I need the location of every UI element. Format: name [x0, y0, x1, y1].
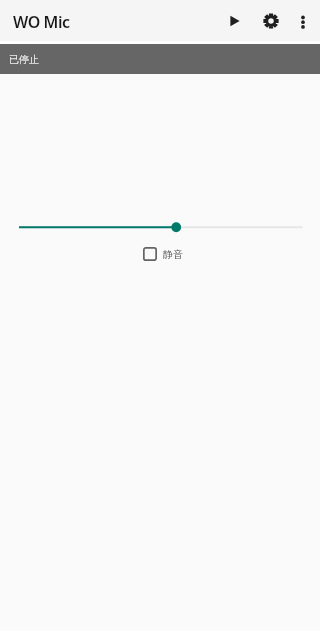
staticText: 已停止: [9, 53, 39, 66]
button[interactable]: Settings: [255, 5, 287, 37]
button[interactable]: More options: [287, 5, 319, 37]
button[interactable]: Start: [219, 5, 251, 37]
button[interactable]: Volume: [0, 209, 320, 245]
button[interactable]: 静音: [138, 242, 183, 266]
staticText: WO Mic: [13, 11, 70, 33]
staticText: 静音: [163, 248, 183, 261]
